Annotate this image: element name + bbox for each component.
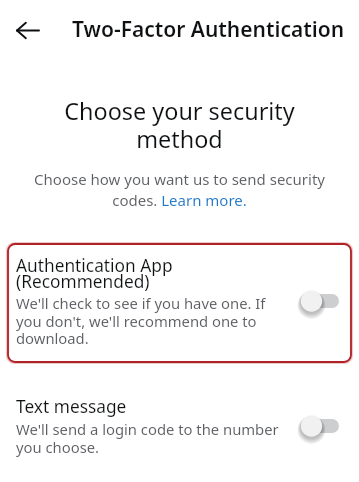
- staticText: We'll send a login code to the number yo…: [16, 419, 288, 457]
- button[interactable]: Toggle Authentication App: [302, 286, 346, 316]
- button[interactable]: Back: [0, 3, 56, 59]
- staticText: We'll check to see if you have one. If y…: [16, 293, 288, 348]
- button[interactable]: Toggle Text message: [302, 411, 346, 441]
- staticText: Choose your security method: [30, 95, 329, 155]
- staticText: Authentication App (Recommended): [16, 254, 173, 293]
- button[interactable]: Learn more.: [160, 187, 248, 205]
- staticText: Text message: [16, 395, 127, 419]
- staticText: Two-Factor Authentication: [72, 15, 345, 44]
- button[interactable]: Text message: [7, 384, 352, 472]
- staticText: Choose how you want us to send security …: [24, 169, 335, 211]
- button[interactable]: Authentication App (Recommended): [7, 243, 352, 363]
